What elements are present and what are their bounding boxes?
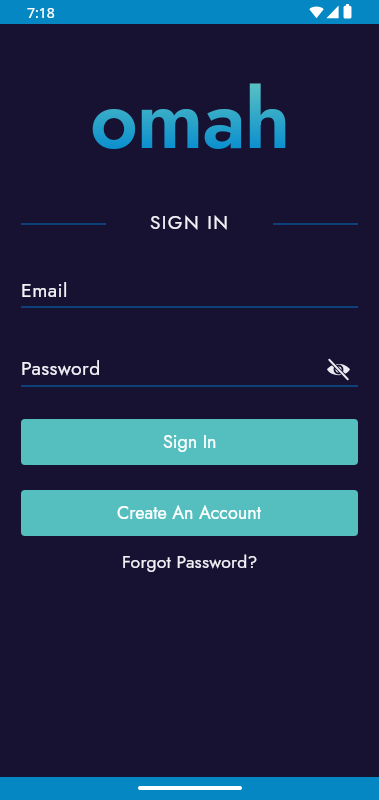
button[interactable]: Create An Account xyxy=(21,490,358,536)
button[interactable]: Forgot Password? xyxy=(114,547,266,576)
staticText: omah xyxy=(90,59,290,179)
staticText: SIGN IN xyxy=(150,209,230,236)
staticText: Forgot Password? xyxy=(122,549,258,574)
staticText: Email xyxy=(21,276,68,304)
staticText: 7:18 xyxy=(27,3,55,22)
staticText: Password xyxy=(21,354,101,382)
button[interactable]: Sign In xyxy=(21,419,358,465)
staticText: Create An Account xyxy=(117,500,262,526)
staticText: Sign In xyxy=(163,429,217,455)
button[interactable]: Show password xyxy=(324,355,352,383)
